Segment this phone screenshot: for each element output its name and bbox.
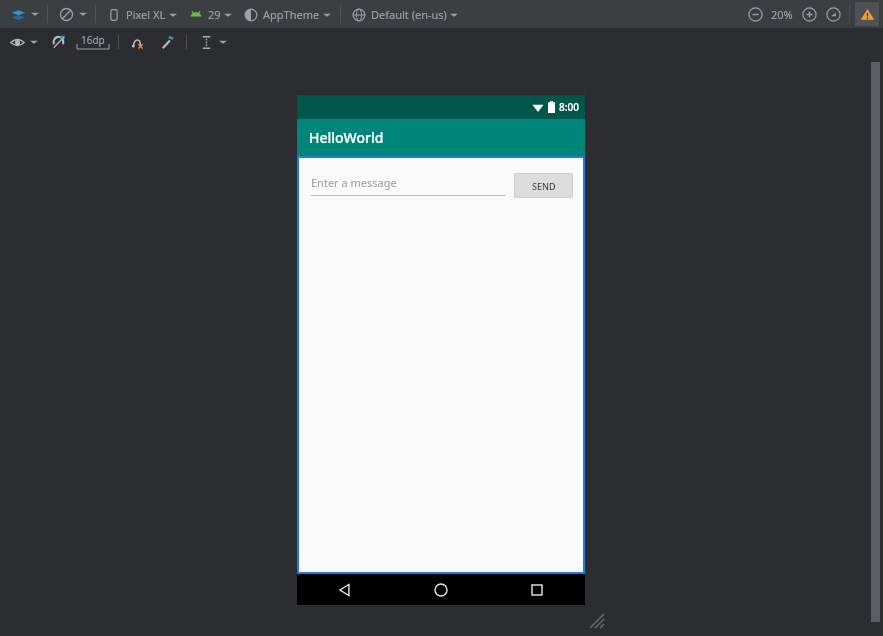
staticText: SEND (532, 180, 556, 192)
button[interactable]: Zoom out (745, 4, 765, 24)
button[interactable]: Back (297, 574, 393, 605)
staticText: Enter a message (311, 175, 397, 190)
staticText: AppTheme (263, 7, 320, 22)
button[interactable]: Zoom to fit (823, 4, 843, 24)
staticText: 16dp (81, 33, 105, 47)
button[interactable]: Warnings (855, 2, 879, 26)
button[interactable]: HelloWorld (297, 119, 585, 156)
button[interactable]: 29 (188, 7, 233, 22)
button[interactable]: AppTheme (243, 7, 332, 22)
button[interactable]: Home (393, 574, 489, 605)
staticText: Default (en-us) (371, 7, 447, 22)
staticText: Pixel XL (126, 7, 166, 22)
staticText: 8:00 (559, 100, 579, 114)
button[interactable]: Orientation (56, 4, 76, 24)
staticText: 20% (771, 7, 793, 22)
staticText: 29 (208, 7, 221, 22)
button[interactable]: Clear constraints (127, 32, 147, 52)
button[interactable]: Infer constraints (157, 32, 177, 52)
button[interactable]: 16dp (76, 33, 110, 51)
button[interactable]: 20% (769, 7, 795, 22)
button[interactable]: Recents (489, 574, 585, 605)
button[interactable]: Zoom in (799, 4, 819, 24)
button[interactable]: SEND (514, 173, 573, 198)
button[interactable]: Enter a message (311, 175, 506, 196)
button[interactable]: Guidelines (196, 32, 216, 52)
button[interactable]: Autoconnect (48, 32, 68, 52)
button[interactable]: Show constraints (7, 32, 27, 52)
button[interactable]: Default (en-us) (351, 7, 459, 22)
staticText: HelloWorld (309, 128, 384, 147)
button[interactable]: Layout variants (8, 4, 28, 24)
button[interactable]: Pixel XL (106, 7, 178, 22)
